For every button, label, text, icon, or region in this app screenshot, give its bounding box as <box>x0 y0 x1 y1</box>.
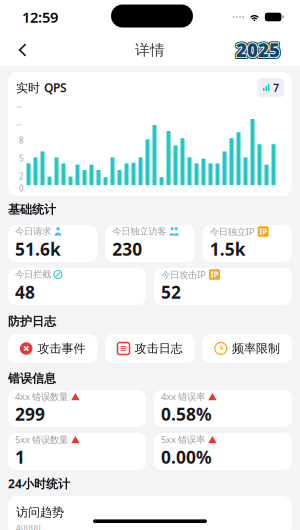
staticText: 2025 <box>236 38 280 63</box>
staticText: 访问趋势 <box>16 505 64 519</box>
staticText: 2025 <box>234 37 278 62</box>
staticText: 2025 <box>237 37 281 62</box>
staticText: 2 <box>19 171 24 182</box>
staticText: 实时 QPS <box>16 79 67 95</box>
button[interactable]: 4xx 错误率 <box>154 390 292 427</box>
staticText: 52 <box>161 280 181 303</box>
button[interactable]: 今日独立IP <box>203 225 292 262</box>
staticText: 5 <box>19 153 24 164</box>
staticText: 2025 <box>235 38 279 63</box>
staticText: 今日请求 <box>15 226 51 237</box>
staticText: 2025 <box>236 38 280 62</box>
staticText: 2025 <box>236 38 280 63</box>
staticText: 2025 <box>234 36 278 61</box>
staticText: 今日独立IP <box>210 225 255 238</box>
staticText: 2025 <box>236 36 280 61</box>
staticText: 2025 <box>236 39 280 64</box>
staticText: 2025 <box>237 37 281 62</box>
staticText: 今日攻击IP <box>161 268 206 281</box>
button[interactable]: 今日拦截 <box>8 268 146 305</box>
staticText: 2025 <box>234 38 278 62</box>
staticText: 2025 <box>235 37 279 62</box>
button[interactable]: 5xx 错误数量 <box>8 433 146 470</box>
staticText: 2025 <box>235 38 279 63</box>
staticText: 11 <box>16 117 24 128</box>
staticText: 12:59 <box>22 7 58 27</box>
staticText: IP <box>259 226 267 237</box>
staticText: 2025 <box>234 39 278 64</box>
staticText: 2025 <box>237 36 281 61</box>
staticText: 2025 <box>237 39 281 64</box>
button[interactable]: 攻击事件 <box>8 334 97 363</box>
staticText: 2025 <box>237 38 281 62</box>
staticText: 0 <box>19 183 24 194</box>
staticText: 攻击日志 <box>135 341 183 356</box>
button[interactable]: 今日攻击IP <box>154 268 292 305</box>
staticText: 2025 <box>235 39 279 64</box>
button[interactable]: Back <box>7 34 38 66</box>
staticText: 2025 <box>238 39 282 64</box>
button[interactable]: 今日请求 <box>8 225 97 262</box>
staticText: 今日独立访客 <box>112 226 166 237</box>
button[interactable]: 频率限制 <box>203 334 292 363</box>
button[interactable]: 4xx 错误数量 <box>8 390 146 427</box>
staticText: 8 <box>19 135 24 146</box>
staticText: 2025 <box>238 36 282 61</box>
staticText: 4xx 错误率 <box>161 390 205 403</box>
staticText: 2025 <box>235 37 279 62</box>
staticText: 299 <box>15 402 45 425</box>
staticText: 2025 <box>234 38 278 63</box>
button[interactable]: 5xx 错误率 <box>154 433 292 470</box>
staticText: 1 <box>15 445 25 468</box>
staticText: 错误信息 <box>8 371 56 386</box>
staticText: 230 <box>112 237 142 260</box>
staticText: 5xx 错误率 <box>161 433 205 446</box>
staticText: 攻击事件 <box>37 341 85 356</box>
staticText: 2025 <box>238 37 282 62</box>
staticText: 14 <box>16 99 24 110</box>
button[interactable]: 攻击日志 <box>105 334 195 363</box>
staticText: 0.58% <box>161 402 212 425</box>
staticText: 51.6k <box>15 237 61 260</box>
staticText: IP <box>210 269 218 280</box>
staticText: 今日拦截 <box>15 269 51 280</box>
staticText: 24小时统计 <box>8 475 70 491</box>
staticText: 2025 <box>237 38 281 63</box>
staticText: 4xx 错误数量 <box>15 390 68 403</box>
staticText: 2025 <box>238 38 282 62</box>
staticText: 基础统计 <box>8 202 56 217</box>
staticText: 0.00% <box>161 445 212 468</box>
staticText: 2025 <box>237 38 281 63</box>
staticText: 40000 <box>16 523 41 530</box>
button[interactable]: 今日独立访客 <box>105 225 195 262</box>
staticText: 详情 <box>135 41 165 59</box>
staticText: 防护日志 <box>8 314 56 329</box>
staticText: 2025 <box>236 37 280 62</box>
staticText: 7 <box>273 80 279 95</box>
staticText: 5xx 错误数量 <box>15 433 68 446</box>
staticText: 频率限制 <box>232 341 280 356</box>
staticText: 2025 <box>235 38 279 62</box>
staticText: 2025 <box>235 36 279 61</box>
staticText: 2025 <box>236 38 280 62</box>
staticText: 48 <box>15 280 35 303</box>
staticText: 2025 <box>238 38 282 63</box>
staticText: 1.5k <box>210 237 246 260</box>
